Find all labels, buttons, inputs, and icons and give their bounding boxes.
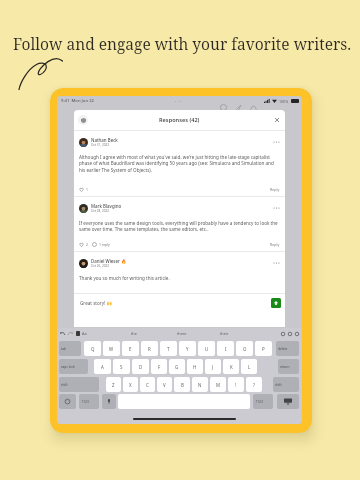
button[interactable]: J <box>205 359 221 374</box>
staticText: Great story! 🙌 <box>80 300 113 306</box>
button[interactable]: F <box>151 359 167 374</box>
button[interactable]: G <box>169 359 185 374</box>
staticText: 2 <box>86 242 88 247</box>
button[interactable]: Reply <box>270 242 280 247</box>
button[interactable]: A <box>94 359 111 374</box>
button[interactable]: 2 <box>79 242 88 247</box>
staticText: 1 reply <box>99 242 110 247</box>
staticText: G <box>175 364 179 370</box>
button[interactable]: M <box>210 377 226 392</box>
staticText: U <box>205 346 209 352</box>
staticText: A <box>101 364 104 370</box>
staticText: C <box>146 382 149 388</box>
button[interactable]: Great story! 🙌 <box>80 294 281 311</box>
button[interactable]: ! <box>228 377 244 392</box>
staticText: the <box>131 331 137 336</box>
staticText: tab <box>61 347 66 351</box>
staticText: delete <box>278 347 288 351</box>
staticText: J <box>212 364 214 370</box>
button[interactable]: S <box>113 359 130 374</box>
staticText: V <box>163 382 166 388</box>
button[interactable]: U <box>198 341 215 356</box>
staticText: Daniel Wieser 🔥 <box>91 258 127 264</box>
button[interactable]: Send <box>271 298 281 308</box>
button[interactable]: 1 reply <box>92 242 110 247</box>
button[interactable]: 1 <box>79 187 88 192</box>
button[interactable]: D <box>132 359 149 374</box>
button[interactable]: L <box>241 359 257 374</box>
staticText: shift <box>275 383 282 387</box>
staticText: shift <box>61 383 68 387</box>
staticText: their <box>220 331 229 336</box>
button[interactable]: More options <box>272 260 280 266</box>
staticText: Mark Blavgino <box>91 203 122 209</box>
button[interactable]: .?123 <box>79 394 99 409</box>
staticText: there <box>177 331 187 336</box>
staticText: D <box>139 364 143 370</box>
button[interactable]: Close <box>273 116 281 124</box>
staticText: E <box>129 346 132 352</box>
button[interactable]: E <box>122 341 139 356</box>
button[interactable]: tab <box>59 341 81 356</box>
staticText: I <box>225 346 227 352</box>
button[interactable]: More options <box>272 205 280 211</box>
button[interactable]: H <box>187 359 203 374</box>
staticText: caps lock <box>61 365 75 369</box>
staticText: F <box>158 364 161 370</box>
staticText: ? <box>253 382 255 388</box>
button[interactable]: Dictation <box>102 394 116 409</box>
staticText: Oct 31, 2022 <box>91 143 110 147</box>
button[interactable]: Y <box>179 341 196 356</box>
button[interactable]: .?123 <box>253 394 273 409</box>
button[interactable]: I <box>217 341 234 356</box>
button[interactable]: O <box>236 341 253 356</box>
staticText: Responses (42) <box>159 116 200 124</box>
staticText: N <box>198 382 202 388</box>
staticText: S <box>120 364 123 370</box>
staticText: Follow and engage with your favorite wri… <box>13 33 352 54</box>
staticText: O <box>243 346 247 352</box>
staticText: R <box>148 346 151 352</box>
staticText: · · · <box>175 98 182 105</box>
staticText: .?123 <box>255 400 263 404</box>
button[interactable]: W <box>103 341 120 356</box>
button[interactable]: Shift <box>273 377 299 392</box>
staticText: H <box>193 364 197 370</box>
button[interactable]: Emoji <box>59 394 76 409</box>
button[interactable]: V <box>157 377 172 392</box>
button[interactable]: K <box>223 359 239 374</box>
staticText: .?123 <box>81 400 89 404</box>
button[interactable]: delete <box>276 341 299 356</box>
button[interactable]: R <box>141 341 158 356</box>
staticText: B <box>181 382 184 388</box>
button[interactable]: C <box>140 377 155 392</box>
button[interactable]: P <box>255 341 272 356</box>
button[interactable]: T <box>160 341 177 356</box>
staticText: Q <box>91 346 95 352</box>
staticText: 9:41 Mon Jun 22 <box>61 98 94 104</box>
button[interactable]: Reply <box>270 187 280 192</box>
staticText: Oct 26, 2022 <box>91 264 110 268</box>
staticText: Nathan Beck <box>91 137 118 143</box>
staticText: 100% <box>279 99 289 104</box>
button[interactable]: N <box>192 377 208 392</box>
button[interactable]: X <box>123 377 138 392</box>
button[interactable]: More options <box>272 139 280 145</box>
staticText: 1 <box>86 187 88 192</box>
staticText: Z <box>112 382 115 388</box>
button[interactable]: B <box>174 377 190 392</box>
button[interactable]: return <box>278 359 299 374</box>
staticText: Oct 28, 2022 <box>91 209 110 213</box>
staticText: return <box>280 365 290 369</box>
button[interactable]: Q <box>84 341 101 356</box>
button[interactable]: caps lock <box>59 359 88 374</box>
button[interactable]: Hide keyboard <box>277 394 299 409</box>
button[interactable]: Shift <box>59 377 99 392</box>
staticText: P <box>262 346 265 352</box>
staticText: T <box>167 346 170 352</box>
button[interactable]: Z <box>106 377 121 392</box>
button[interactable]: ? <box>246 377 262 392</box>
button[interactable]: Privacy <box>78 115 88 125</box>
staticText: Although I agree with most of what you'v… <box>79 154 280 174</box>
